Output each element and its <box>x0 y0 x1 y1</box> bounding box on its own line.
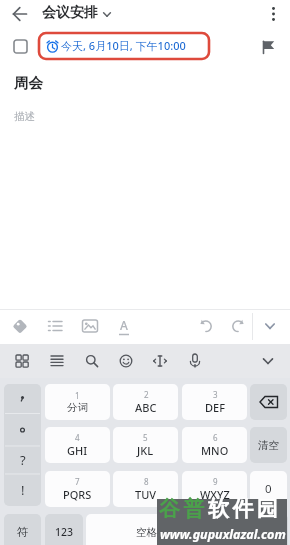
button[interactable]: A <box>110 312 138 340</box>
staticText: 空格 <box>136 526 157 539</box>
button[interactable] <box>78 347 106 375</box>
staticText: 7 <box>75 476 80 487</box>
button[interactable]: 4 <box>45 427 110 463</box>
staticText: 符 <box>17 525 29 539</box>
button[interactable]: 1 <box>45 384 110 420</box>
staticText: PQRS <box>63 487 92 502</box>
staticText: ? <box>20 451 26 469</box>
staticText: DEF <box>205 400 225 415</box>
staticText: 123 <box>55 525 74 539</box>
staticText: 描述 <box>14 110 35 123</box>
staticText: 6 <box>213 432 218 443</box>
button[interactable]: ? <box>4 384 41 506</box>
staticText: WXYZ <box>200 487 230 502</box>
button[interactable]: 空格 <box>86 514 206 545</box>
staticText: 分词 <box>67 401 88 414</box>
staticText: JKL <box>137 443 154 458</box>
staticText: 3 <box>213 389 218 400</box>
button[interactable]: 符 <box>4 514 41 545</box>
button[interactable]: 会议安排 <box>42 4 98 22</box>
button[interactable] <box>99 4 115 24</box>
button[interactable]: 清空 <box>250 427 287 463</box>
staticText: 清空 <box>258 439 279 452</box>
staticText: 4 <box>75 432 80 443</box>
button[interactable]: 123 <box>45 514 83 545</box>
button[interactable]: 9 <box>182 471 247 507</box>
staticText: ! <box>21 481 25 499</box>
staticText: GHI <box>67 443 88 458</box>
button[interactable] <box>262 2 284 26</box>
staticText: 软件园 <box>208 496 281 522</box>
button[interactable]: 5 <box>113 427 178 463</box>
button[interactable]: 3 <box>182 384 247 420</box>
button[interactable] <box>256 312 284 340</box>
staticText: 5 <box>143 432 148 443</box>
staticText: 1 <box>75 390 80 401</box>
button[interactable] <box>43 347 71 375</box>
button[interactable] <box>45 39 60 54</box>
staticText: TUV <box>135 487 157 502</box>
button[interactable] <box>6 2 34 30</box>
staticText: 谷普 <box>159 496 208 522</box>
staticText: 今天, 6月10日, 下午10:00 <box>61 38 186 53</box>
staticText: 9 <box>213 476 218 487</box>
button[interactable]: 今天, 6月10日, 下午10:00 <box>61 38 186 53</box>
staticText: ABC <box>135 400 157 415</box>
button[interactable] <box>224 312 252 340</box>
button[interactable] <box>8 347 36 375</box>
button[interactable] <box>209 514 288 545</box>
button[interactable]: 0 <box>250 471 287 507</box>
staticText: 周会 <box>14 74 43 92</box>
staticText: 0 <box>265 481 272 497</box>
button[interactable] <box>6 312 34 340</box>
staticText: 8 <box>144 476 149 487</box>
button[interactable] <box>41 312 69 340</box>
staticText: A <box>120 317 128 333</box>
staticText: MNO <box>201 443 229 458</box>
button[interactable]: 6 <box>182 427 247 463</box>
button[interactable] <box>146 347 174 375</box>
button[interactable] <box>112 347 140 375</box>
button[interactable] <box>10 36 31 57</box>
button[interactable] <box>76 312 104 340</box>
staticText: www.gupuxlazal.com <box>160 526 286 543</box>
button[interactable] <box>254 347 282 375</box>
button[interactable] <box>192 312 220 340</box>
button[interactable] <box>181 347 209 375</box>
button[interactable] <box>257 37 277 57</box>
button[interactable]: 7 <box>45 471 110 507</box>
staticText: 会议安排 <box>42 4 98 22</box>
button[interactable] <box>250 384 287 420</box>
staticText: 2 <box>144 389 149 400</box>
button[interactable]: 2 <box>113 384 178 420</box>
button[interactable]: 8 <box>113 471 178 507</box>
